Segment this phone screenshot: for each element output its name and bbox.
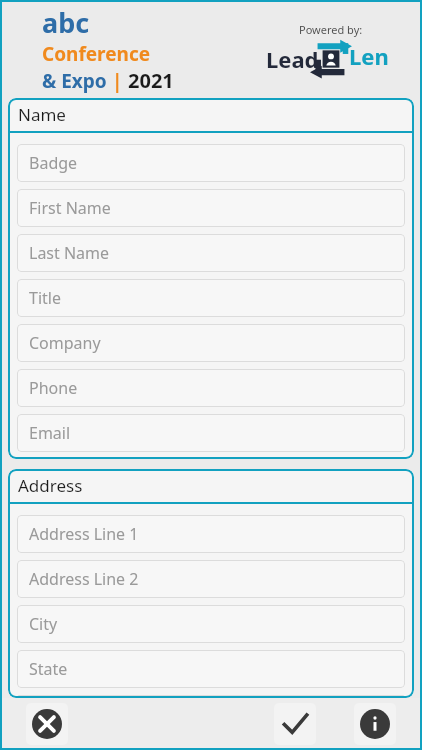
staticText: Phone — [29, 377, 78, 399]
staticText: Badge — [29, 152, 78, 174]
staticText: Lead — [266, 44, 319, 74]
button[interactable]: Save — [274, 703, 316, 745]
staticText: State — [29, 658, 68, 680]
staticText: Lens — [349, 41, 396, 77]
staticText: Powered by: — [299, 22, 363, 37]
button[interactable]: Phone — [17, 369, 405, 407]
button[interactable]: Name — [8, 98, 414, 131]
button[interactable]: Badge — [17, 144, 405, 182]
staticText: abc — [42, 4, 90, 41]
staticText: Zip — [29, 695, 53, 698]
button[interactable]: Last Name — [17, 234, 405, 272]
button[interactable]: Cancel — [26, 703, 68, 745]
button[interactable]: Address Line 2 — [17, 560, 405, 598]
staticText: Email — [29, 422, 71, 444]
staticText: First Name — [29, 197, 111, 219]
button[interactable]: City — [17, 605, 405, 643]
staticText: Last Name — [29, 242, 110, 264]
button[interactable]: Information — [354, 703, 396, 745]
button[interactable]: First Name — [17, 189, 405, 227]
staticText: Address Line 2 — [29, 568, 139, 590]
staticText: Title — [29, 287, 61, 309]
staticText: Conference — [42, 41, 151, 67]
button[interactable]: Zip — [17, 695, 405, 698]
button[interactable]: Address Line 1 — [17, 515, 405, 553]
button[interactable]: Email — [17, 414, 405, 452]
staticText: Company — [29, 332, 101, 354]
staticText: | — [112, 68, 128, 94]
staticText: 2021 — [128, 67, 174, 94]
staticText: Address Line 1 — [29, 523, 139, 545]
staticText: Address — [18, 474, 83, 497]
button[interactable]: Address — [8, 469, 414, 502]
staticText: Name — [18, 103, 66, 126]
staticText: City — [29, 613, 58, 635]
button[interactable]: State — [17, 650, 405, 688]
staticText: & Expo — [42, 68, 112, 94]
button[interactable]: Company — [17, 324, 405, 362]
button[interactable]: Title — [17, 279, 405, 317]
